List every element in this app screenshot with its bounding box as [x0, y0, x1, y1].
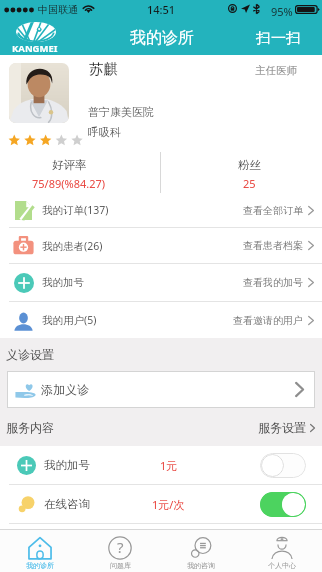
staticText: 问题库 — [110, 561, 131, 570]
button[interactable]: 服务设置 — [258, 420, 322, 435]
staticText: 图文咨询 — [44, 536, 90, 550]
staticText: 查看患者档案 — [243, 239, 303, 252]
staticText: 我的加号 — [42, 276, 84, 289]
staticText: 我的诊所 — [26, 561, 54, 570]
button[interactable]: 粉丝 — [161, 152, 322, 193]
button[interactable]: 我的加号 — [0, 264, 322, 301]
staticText: 服务设置 — [258, 420, 306, 435]
button[interactable]: 我的订单(137) — [0, 193, 322, 227]
button[interactable]: 我的患者(26) — [0, 228, 322, 263]
staticText: 添加义诊 — [41, 382, 89, 397]
staticText: 75/89(%84.27) — [32, 176, 106, 191]
staticText: 主任医师 — [255, 64, 297, 77]
staticText: 1元/次 — [152, 497, 185, 512]
button[interactable]: 我的咨询 — [160, 530, 241, 572]
staticText: KANGMEI — [12, 42, 58, 55]
button[interactable]: 添加义诊 — [7, 371, 315, 408]
button[interactable]: Switch on — [260, 531, 306, 556]
staticText: 1元 — [160, 458, 178, 473]
staticText: 我的诊所 — [130, 28, 194, 48]
staticText: 我的用户(5) — [42, 313, 97, 327]
button[interactable]: 我的用户(5) — [0, 302, 322, 338]
button[interactable]: 好评率 — [0, 152, 160, 193]
staticText: 14:51 — [147, 2, 176, 17]
button[interactable]: 图文咨询 — [0, 524, 322, 562]
staticText: 我的加号 — [44, 458, 90, 472]
staticText: 普宁康美医院 — [88, 105, 154, 119]
button[interactable]: Switch on — [260, 492, 306, 517]
staticText: 义诊设置 — [6, 347, 54, 362]
staticText: 服务内容 — [6, 420, 54, 435]
staticText: 我的患者(26) — [42, 239, 103, 253]
staticText: 我的订单(137) — [42, 203, 109, 217]
button[interactable]: 扫一扫 — [256, 29, 301, 48]
staticText: 粉丝 — [238, 158, 261, 172]
staticText: 我的咨询 — [187, 561, 215, 570]
staticText: 好评率 — [52, 158, 87, 172]
staticText: 在线咨询 — [44, 497, 90, 511]
staticText: 查看全部订单 — [243, 204, 303, 217]
button[interactable]: 在线咨询 — [0, 485, 322, 523]
button[interactable]: 我的加号 — [0, 446, 322, 484]
staticText: ? — [117, 537, 124, 557]
button[interactable]: ? — [80, 530, 160, 572]
staticText: 查看我的加号 — [243, 276, 303, 289]
staticText: 苏麒 — [89, 60, 118, 78]
staticText: 个人中心 — [268, 561, 296, 570]
staticText: 中国联通 — [38, 3, 78, 16]
button[interactable]: 个人中心 — [241, 530, 322, 572]
staticText: 95% — [271, 4, 293, 19]
button[interactable]: Switch off — [260, 453, 306, 478]
staticText: 呼吸科 — [88, 125, 121, 139]
staticText: 25 — [243, 176, 256, 191]
button[interactable]: 我的诊所 — [0, 530, 80, 572]
staticText: 查看邀请的用户 — [233, 314, 303, 327]
